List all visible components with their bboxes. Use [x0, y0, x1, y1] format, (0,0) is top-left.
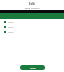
button[interactable]: Item — [0, 19, 64, 24]
button[interactable]: Item — [0, 29, 64, 34]
staticText: Time Control — [24, 6, 40, 9]
staticText: Edit — [29, 2, 35, 6]
staticText: Item — [8, 20, 14, 23]
button[interactable]: Item — [0, 24, 64, 29]
button[interactable]: SAVE — [20, 65, 45, 70]
staticText: SAVE — [30, 66, 36, 69]
staticText: Item — [8, 25, 14, 28]
staticText: Item — [8, 30, 14, 33]
